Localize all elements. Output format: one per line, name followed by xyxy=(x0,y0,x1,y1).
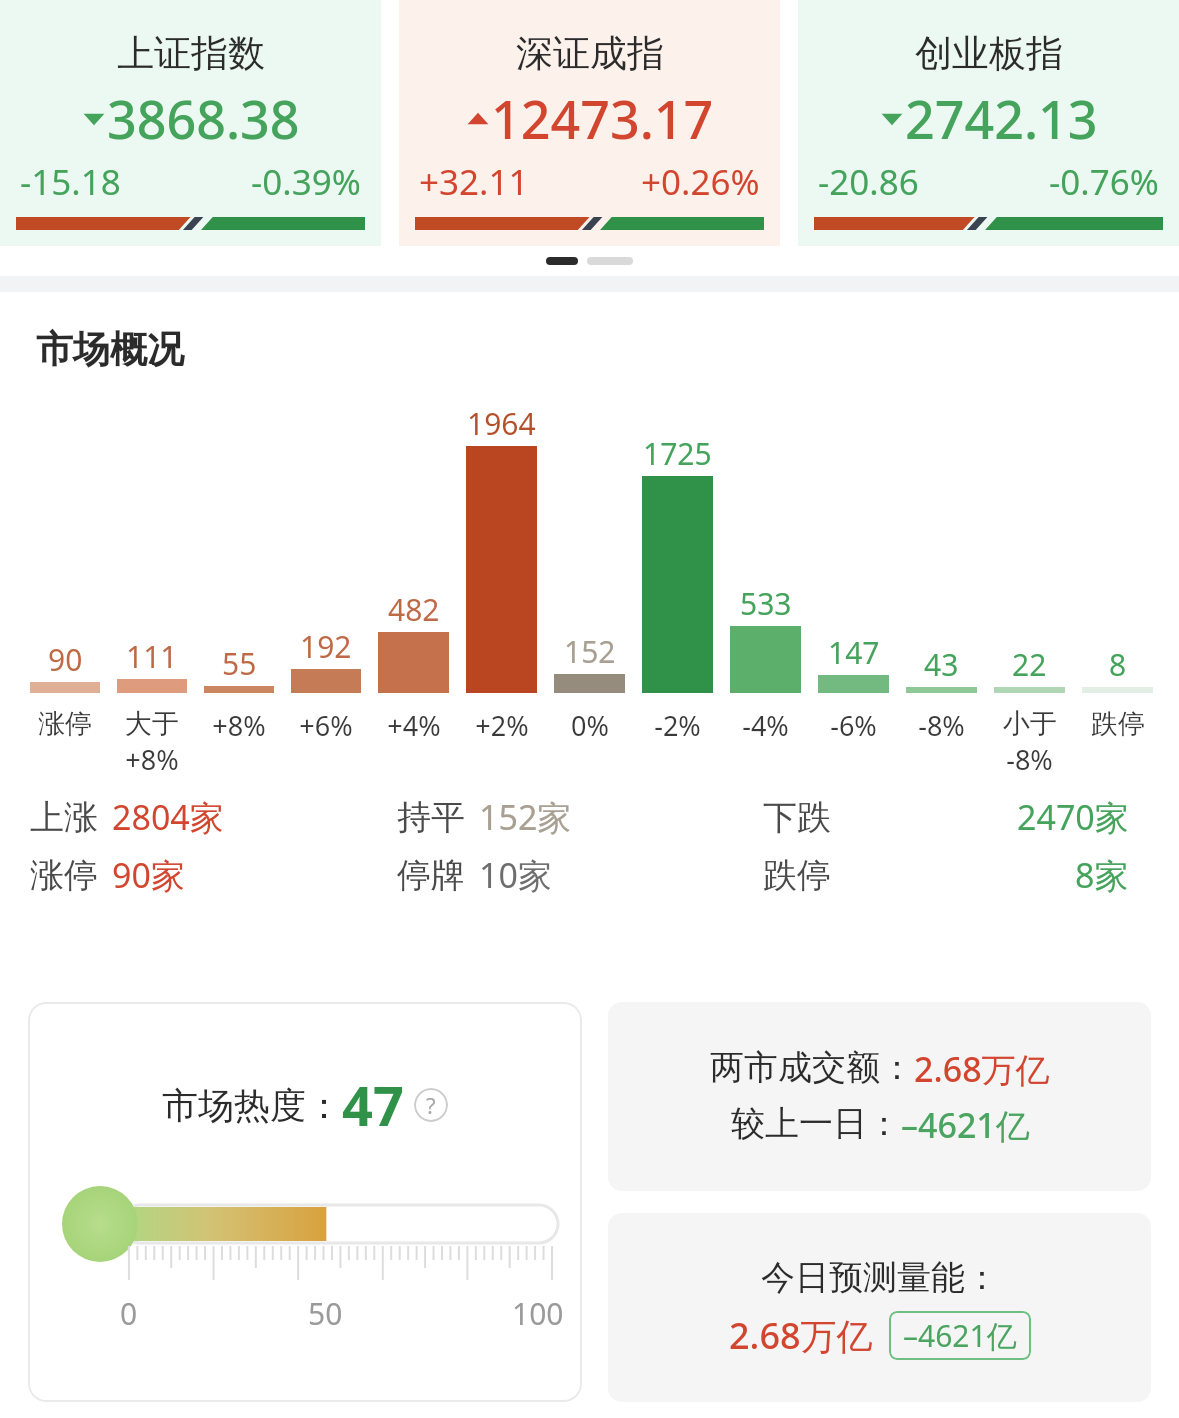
staticText: 深证成指 xyxy=(516,30,664,77)
staticText: -2% xyxy=(654,707,701,744)
staticText: 8家 xyxy=(1075,852,1129,898)
staticText: 2.68万亿 xyxy=(914,1046,1050,1092)
staticText: 上涨 xyxy=(30,796,98,839)
staticText: -15.18 xyxy=(20,158,121,206)
staticText: 涨停 xyxy=(30,854,98,897)
staticText: 1964 xyxy=(467,403,536,444)
staticText: +32.11 xyxy=(419,158,529,206)
staticText: 2804家 xyxy=(112,794,224,840)
staticText: 今日预测量能： xyxy=(761,1256,999,1299)
staticText: +4% xyxy=(387,707,441,744)
staticText: +0.26% xyxy=(641,158,760,206)
staticText: 10家 xyxy=(479,852,552,898)
staticText: 0% xyxy=(571,707,609,744)
staticText: 482 xyxy=(388,589,440,630)
staticText: 90家 xyxy=(112,852,185,898)
staticText: -20.86 xyxy=(818,158,919,206)
staticText: –4621亿 xyxy=(901,1102,1030,1148)
button[interactable]: 创业板指 xyxy=(798,0,1179,246)
staticText: 12473.17 xyxy=(491,83,714,154)
staticText: +6% xyxy=(299,707,353,744)
staticText: 152 xyxy=(564,631,616,672)
staticText: 持平 xyxy=(397,796,465,839)
staticText: -8% xyxy=(1006,741,1053,778)
staticText: 跌停 xyxy=(1091,707,1145,741)
staticText: 147 xyxy=(828,632,880,673)
staticText: 1725 xyxy=(643,433,712,474)
staticText: 上证指数 xyxy=(117,30,265,77)
staticText: -0.76% xyxy=(1049,158,1159,206)
staticText: 100 xyxy=(512,1293,564,1334)
staticText: 90 xyxy=(48,639,83,680)
staticText: 涨停 xyxy=(38,707,92,741)
button[interactable]: 市场热度： xyxy=(28,1002,582,1402)
staticText: 0 xyxy=(120,1293,138,1334)
staticText: –4621亿 xyxy=(903,1315,1017,1356)
staticText: 较上一日： xyxy=(731,1102,901,1145)
staticText: 111 xyxy=(126,636,178,677)
staticText: 533 xyxy=(740,583,792,624)
staticText: 两市成交额： xyxy=(710,1046,914,1089)
staticText: 43 xyxy=(924,644,959,685)
staticText: ? xyxy=(426,1090,436,1120)
staticText: 47 xyxy=(342,1068,404,1142)
staticText: 市场概况 xyxy=(36,326,184,373)
button[interactable]: 说明 xyxy=(414,1088,448,1122)
staticText: +2% xyxy=(475,707,529,744)
staticText: 停牌 xyxy=(397,854,465,897)
staticText: -6% xyxy=(830,707,877,744)
staticText: 创业板指 xyxy=(915,30,1063,77)
staticText: 2470家 xyxy=(1017,794,1129,840)
staticText: +8% xyxy=(125,741,179,778)
staticText: 下跌 xyxy=(763,796,831,839)
staticText: 跌停 xyxy=(763,854,831,897)
button[interactable]: 深证成指 xyxy=(399,0,780,246)
staticText: +8% xyxy=(212,707,266,744)
staticText: 152家 xyxy=(479,794,572,840)
staticText: 大于 xyxy=(125,707,179,741)
button[interactable]: 今日预测量能： xyxy=(608,1213,1151,1402)
staticText: -8% xyxy=(918,707,965,744)
staticText: 2.68万亿 xyxy=(729,1311,873,1360)
staticText: 50 xyxy=(308,1293,343,1334)
button[interactable]: 上证指数 xyxy=(0,0,381,246)
staticText: -4% xyxy=(742,707,789,744)
staticText: -0.39% xyxy=(251,158,361,206)
button[interactable]: 两市成交额： xyxy=(608,1002,1151,1191)
staticText: 3868.38 xyxy=(107,83,300,154)
staticText: 小于 xyxy=(1003,707,1057,741)
staticText: 市场热度： xyxy=(162,1083,342,1128)
staticText: 2742.13 xyxy=(905,83,1098,154)
staticText: 192 xyxy=(300,626,352,667)
staticText: 22 xyxy=(1012,644,1047,685)
staticText: 55 xyxy=(222,643,257,684)
staticText: 8 xyxy=(1109,644,1127,685)
